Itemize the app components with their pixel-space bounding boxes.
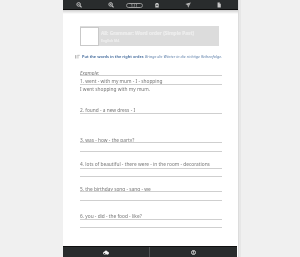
staticText: 1 / 1 [131, 4, 138, 8]
button[interactable]: Share [181, 0, 195, 9]
button[interactable]: Zoom out [72, 0, 86, 9]
staticText: 3. was - how - the party? [80, 137, 135, 144]
button[interactable]: Info [150, 247, 237, 257]
staticText: Example: [80, 70, 100, 77]
button[interactable]: Document [212, 0, 226, 9]
staticText: Put the words in the right order. [82, 54, 145, 59]
staticText: English M4 [101, 38, 120, 43]
button[interactable]: Lock [150, 0, 164, 9]
staticText: 1. went - with my mum - I - shopping [80, 78, 163, 85]
button[interactable]: Zoom in [104, 0, 118, 9]
staticText: 4. lots of beautiful - there were - in t… [80, 161, 210, 168]
staticText: Bringe die Wörter in die richtige Reihen… [145, 54, 223, 59]
staticText: 5. the birthday song - sang - we [80, 186, 151, 193]
button[interactable]: A8: Grammar: Word order (Simple Past) [80, 26, 219, 46]
staticText: 2. found - a new dress - I [80, 107, 136, 114]
button[interactable]: Save to cloud [63, 247, 149, 257]
staticText: I went shopping with my mum. [80, 86, 151, 93]
button[interactable]: Page 1 of 1 [126, 3, 143, 8]
staticText: 6. you - did - the food - like? [80, 213, 142, 220]
staticText: A8: Grammar: Word order (Simple Past) [101, 30, 195, 37]
